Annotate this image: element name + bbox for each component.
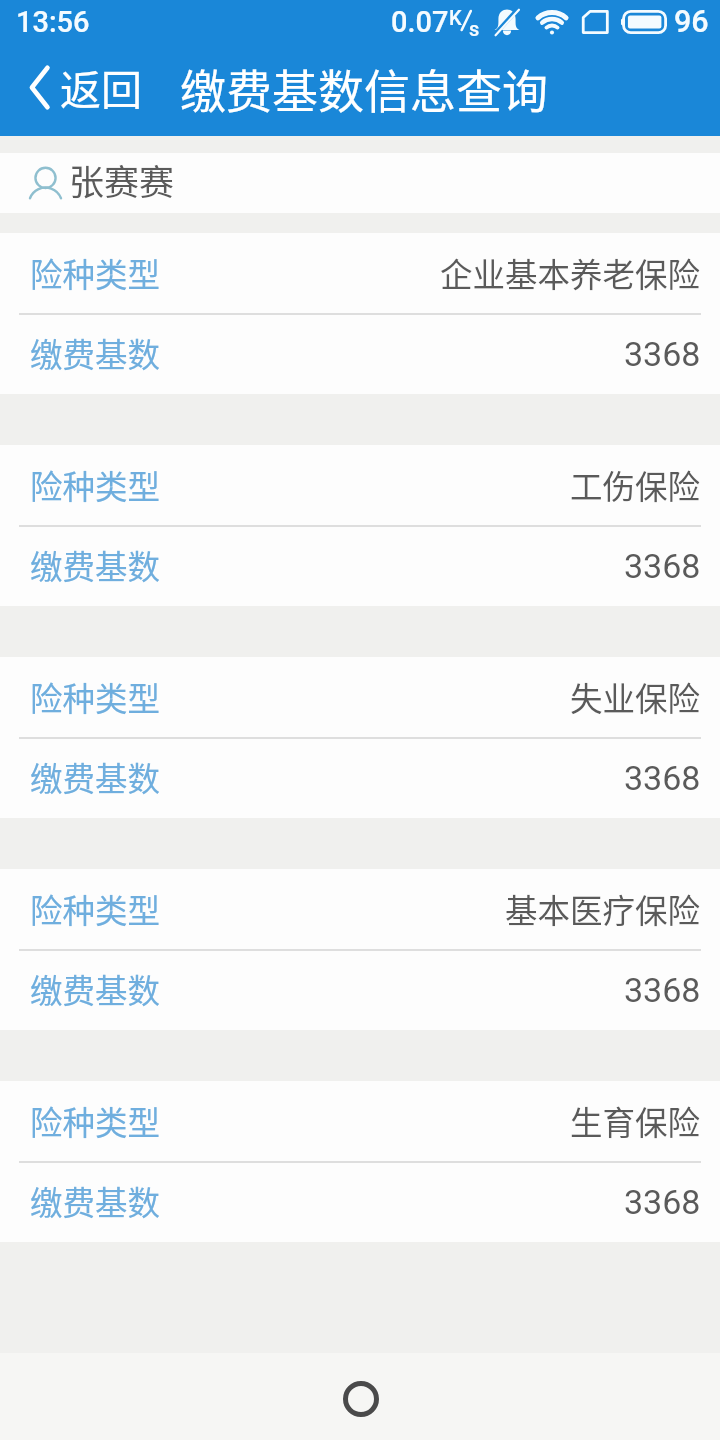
staticText: 失业保险	[570, 673, 701, 720]
staticText: 3368	[624, 970, 701, 1010]
staticText: 3368	[624, 334, 701, 374]
staticText: 缴费基数	[30, 1177, 161, 1224]
button[interactable]: 返回	[0, 48, 164, 136]
staticText: 缴费基数信息查询	[180, 55, 548, 122]
button[interactable]: 缴费基数	[0, 739, 720, 818]
button[interactable]: 缴费基数	[0, 951, 720, 1030]
staticText: K	[449, 6, 462, 29]
staticText: 缴费基数	[30, 965, 161, 1012]
staticText: 缴费基数	[30, 329, 161, 376]
staticText: 3368	[624, 546, 701, 586]
staticText: 险种类型	[30, 885, 161, 932]
staticText: 3368	[624, 1182, 701, 1222]
staticText: 返回	[60, 57, 142, 116]
staticText: 生育保险	[570, 1097, 701, 1144]
staticText: 0.07	[391, 5, 449, 39]
staticText: 张赛赛	[69, 154, 175, 205]
staticText: 险种类型	[30, 249, 161, 296]
button[interactable]: 张赛赛	[0, 153, 720, 213]
button[interactable]: 险种类型	[0, 1081, 720, 1163]
button[interactable]: 缴费基数	[0, 1163, 720, 1242]
button[interactable]: 险种类型	[0, 657, 720, 739]
staticText: 企业基本养老保险	[440, 249, 701, 296]
staticText: 13:56	[16, 5, 90, 39]
staticText: 工伤保险	[570, 461, 701, 508]
staticText: 96	[674, 4, 709, 40]
button[interactable]: 缴费基数	[0, 527, 720, 606]
button[interactable]: 缴费基数	[0, 315, 720, 394]
staticText: s	[469, 17, 480, 40]
staticText: 基本医疗保险	[505, 885, 701, 932]
staticText: 险种类型	[30, 461, 161, 508]
button[interactable]: 险种类型	[0, 869, 720, 951]
staticText: 3368	[624, 758, 701, 798]
staticText: 险种类型	[30, 1097, 161, 1144]
staticText: 缴费基数	[30, 541, 161, 588]
staticText: 缴费基数	[30, 753, 161, 800]
button[interactable]: 险种类型	[0, 233, 720, 315]
button[interactable]: Home	[333, 1371, 389, 1427]
staticText: 险种类型	[30, 673, 161, 720]
button[interactable]: 险种类型	[0, 445, 720, 527]
